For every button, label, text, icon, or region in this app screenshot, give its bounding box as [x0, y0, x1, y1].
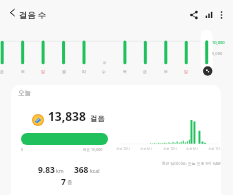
button[interactable]: Share — [186, 7, 202, 23]
staticText: 368 — [74, 164, 89, 175]
button[interactable]: Back — [4, 4, 20, 20]
staticText: 토 — [19, 69, 27, 74]
staticText: 화 — [80, 69, 88, 74]
staticText: 수 — [100, 69, 108, 74]
button[interactable]: Statistics — [201, 7, 217, 23]
staticText: 걸음 수 — [19, 9, 46, 20]
staticText: 오후 6시 — [183, 147, 201, 151]
staticText: 토 — [162, 69, 170, 74]
staticText: 오전 12시 — [114, 147, 132, 151]
staticText: 일 — [39, 69, 47, 74]
staticText: 0 — [21, 147, 24, 152]
staticText: 5,000 — [212, 51, 223, 56]
staticText: 최근 업데이트: 오늘 오후 9시 54분 — [111, 161, 221, 166]
staticText: 금 — [141, 69, 149, 74]
staticText: 층 — [67, 179, 73, 186]
staticText: 목 — [121, 69, 129, 74]
staticText: 오후 11시 — [206, 147, 221, 151]
staticText: 13,838 — [48, 108, 86, 124]
staticText: 7 — [61, 176, 66, 187]
staticText: 오늘 — [18, 89, 32, 97]
staticText: 일 — [182, 69, 190, 74]
staticText: 금 — [0, 69, 6, 74]
staticText: 10,000 — [212, 40, 225, 45]
staticText: 9.83 — [38, 164, 55, 175]
staticText: km — [56, 167, 64, 174]
button[interactable]: More options — [214, 7, 230, 23]
staticText: 오후 12시 — [161, 147, 179, 151]
staticText: 오전 6시 — [137, 147, 155, 151]
staticText: 목표 10,000 — [83, 147, 103, 152]
staticText: kcal — [90, 167, 100, 174]
staticText: 월 — [60, 69, 68, 74]
staticText: 걸음 — [90, 114, 105, 123]
